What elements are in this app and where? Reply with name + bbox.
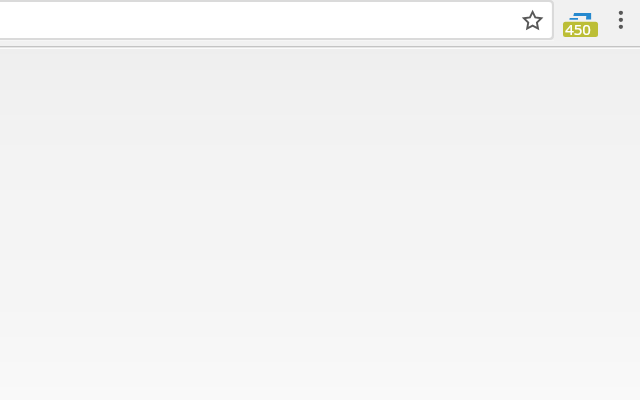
button[interactable]: Bookmark this page bbox=[517, 5, 548, 37]
button[interactable]: Customize and control Chrome bbox=[609, 4, 633, 36]
button[interactable]: Extension, 450 items bbox=[561, 8, 600, 39]
button[interactable]: Address and search bar bbox=[0, 0, 514, 40]
staticText: 450 bbox=[565, 19, 591, 39]
